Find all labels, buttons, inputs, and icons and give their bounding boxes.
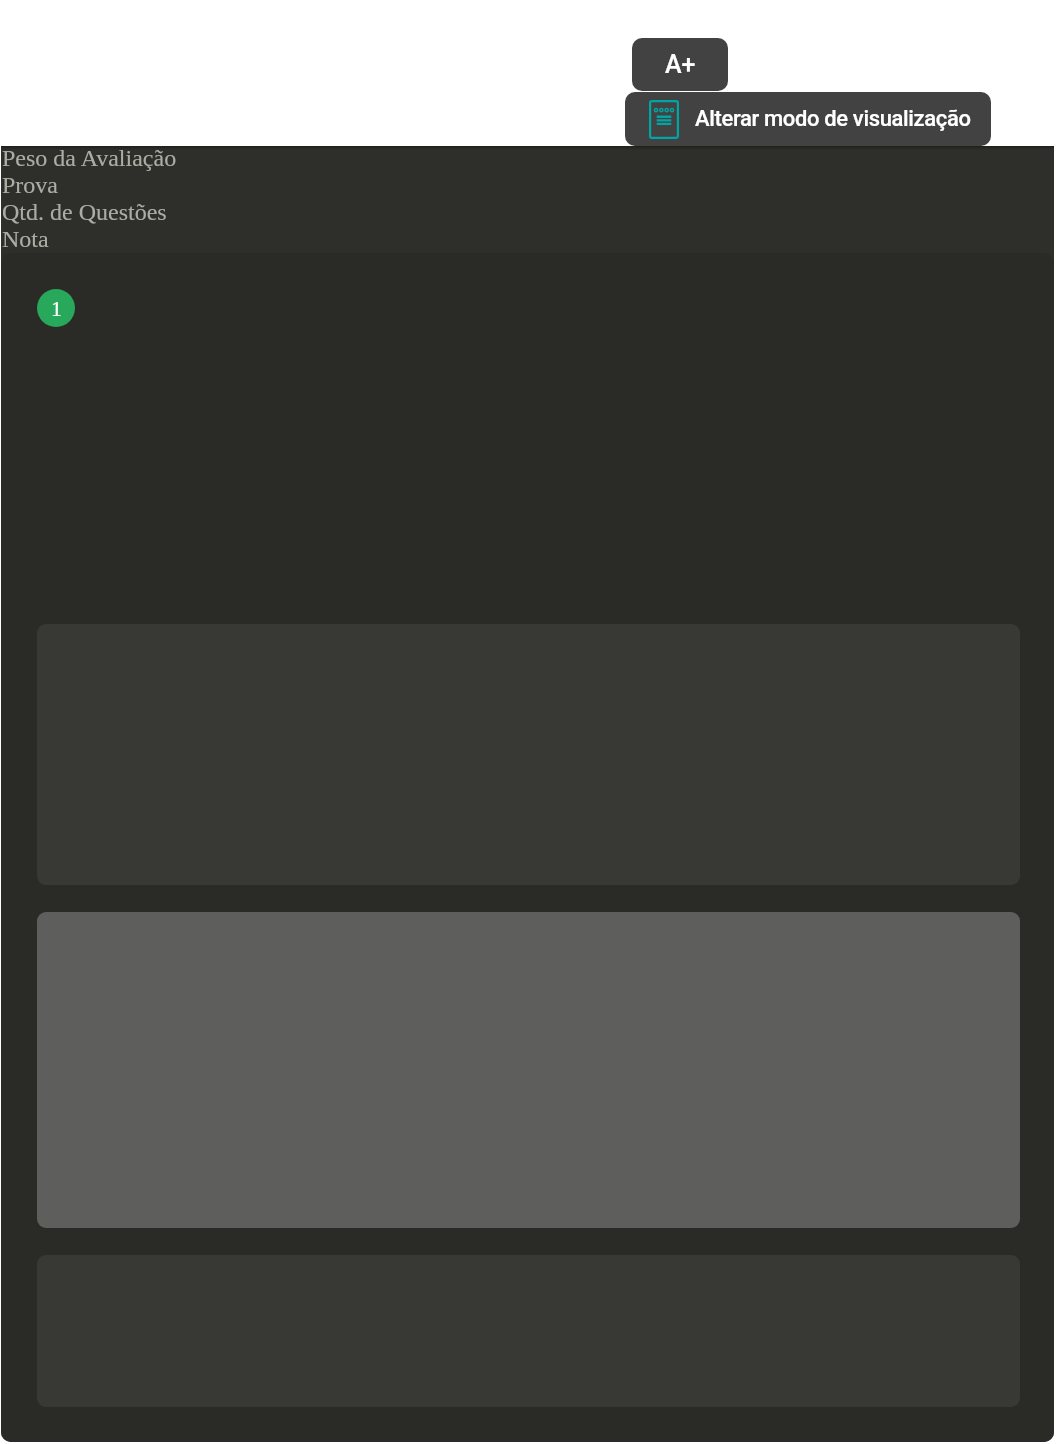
button[interactable]: Alterar modo de visualização [625, 92, 991, 146]
staticText: Peso da Avaliação [2, 146, 177, 172]
staticText: Alterar modo de visualização [695, 106, 971, 132]
staticText: Nota [2, 226, 49, 253]
staticText: A+ [665, 50, 696, 79]
button[interactable]: A+ [632, 38, 728, 91]
other: Alterar modo de visualização [649, 100, 679, 139]
button[interactable]: 1 [37, 289, 75, 327]
staticText: Qtd. de Questões [2, 199, 167, 226]
staticText: 1 [51, 296, 62, 320]
staticText: Prova [2, 172, 58, 199]
